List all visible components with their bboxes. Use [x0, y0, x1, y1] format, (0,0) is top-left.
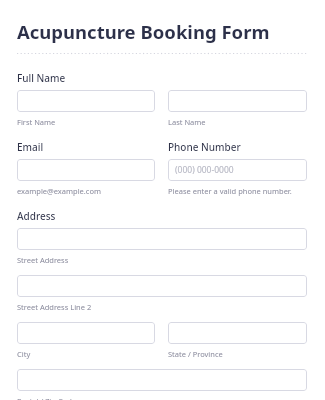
staticText: City [17, 349, 31, 359]
staticText: Acupuncture Booking Form [17, 19, 270, 44]
staticText: Street Address [17, 255, 69, 265]
staticText: example@example.com [17, 186, 101, 196]
button[interactable] [168, 322, 307, 344]
staticText: Postal / Zip Code [17, 396, 77, 400]
staticText: Email [17, 140, 44, 154]
button[interactable] [168, 90, 307, 112]
staticText: Street Address Line 2 [17, 302, 92, 312]
button[interactable] [17, 322, 155, 344]
staticText: Address [17, 209, 56, 223]
staticText: State / Province [168, 349, 223, 359]
button[interactable] [17, 90, 155, 112]
button[interactable] [17, 228, 307, 250]
staticText: Please enter a valid phone number. [168, 186, 292, 196]
staticText: Full Name [17, 71, 66, 85]
button[interactable] [17, 159, 155, 181]
staticText: First Name [17, 117, 56, 127]
button[interactable] [17, 275, 307, 297]
staticText: Last Name [168, 117, 206, 127]
staticText: Phone Number [168, 140, 241, 154]
staticText: (000) 000-0000 [175, 164, 234, 176]
button[interactable] [17, 369, 307, 391]
button[interactable]: (000) 000-0000 [168, 159, 307, 181]
